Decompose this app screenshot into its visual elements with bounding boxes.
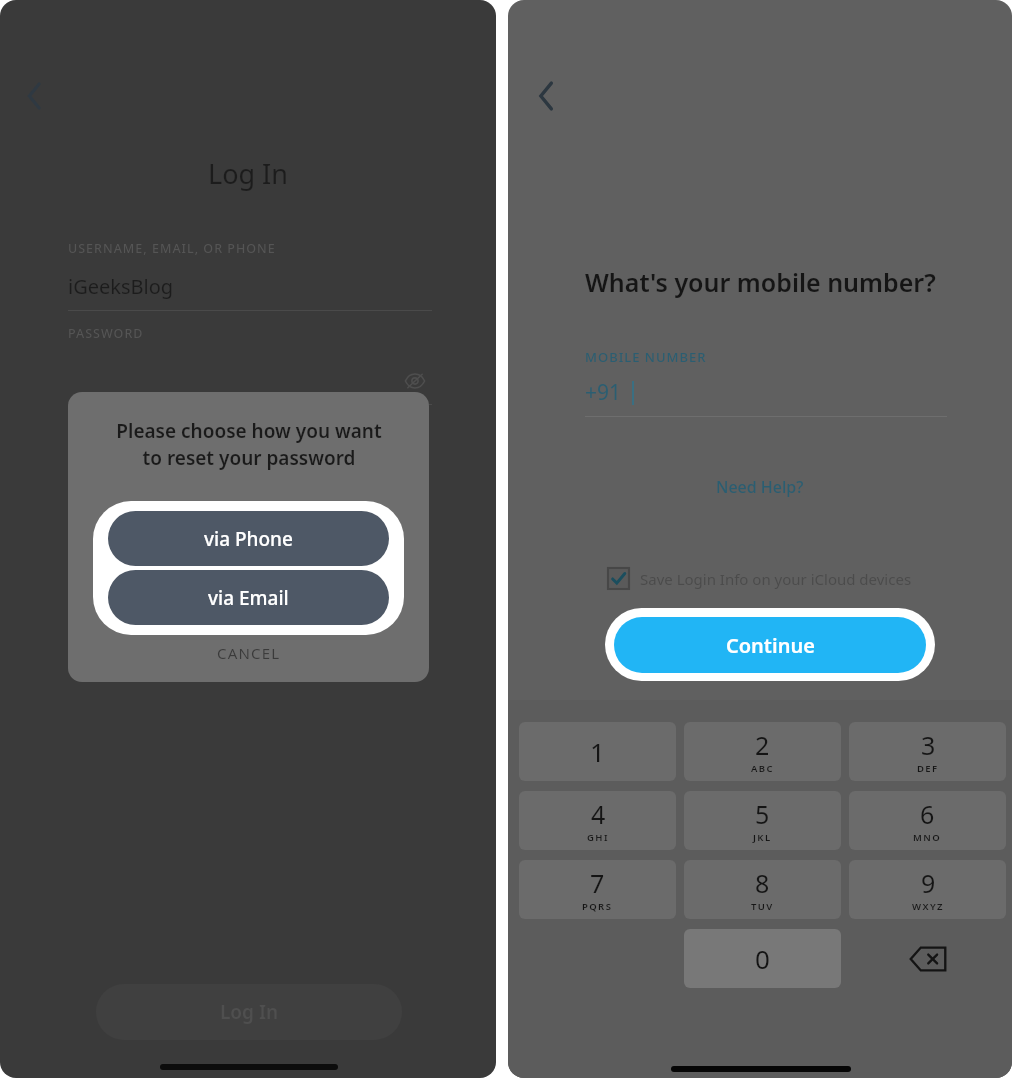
staticText: JKL bbox=[753, 831, 772, 844]
button[interactable]: 6 bbox=[849, 791, 1006, 850]
button[interactable]: CANCEL bbox=[199, 639, 299, 667]
button[interactable]: via Email bbox=[108, 570, 389, 625]
staticText: MOBILE NUMBER bbox=[585, 348, 707, 366]
button[interactable]: Continue bbox=[614, 617, 926, 673]
staticText: 5 bbox=[755, 797, 770, 831]
button[interactable]: 5 bbox=[684, 791, 841, 850]
staticText: 4 bbox=[591, 797, 606, 831]
staticText: Need Help? bbox=[716, 476, 804, 498]
staticText: 2 bbox=[755, 728, 770, 762]
staticText: 6 bbox=[920, 797, 935, 831]
staticText: MNO bbox=[913, 831, 942, 844]
staticText: via Email bbox=[208, 585, 289, 611]
staticText: ABC bbox=[751, 762, 774, 775]
button[interactable]: 0 bbox=[684, 929, 841, 988]
staticText: TUV bbox=[751, 900, 774, 913]
staticText: 3 bbox=[921, 728, 936, 762]
staticText: DEF bbox=[917, 762, 939, 775]
button[interactable]: 3 bbox=[849, 722, 1006, 781]
button[interactable]: 7 bbox=[519, 860, 676, 919]
button[interactable]: 4 bbox=[519, 791, 676, 850]
staticText: 0 bbox=[755, 941, 770, 976]
staticText: via Phone bbox=[204, 526, 293, 552]
staticText: Log In bbox=[220, 999, 279, 1025]
staticText: 8 bbox=[755, 866, 770, 900]
staticText: Please choose how you want to reset your… bbox=[116, 418, 382, 471]
staticText: CANCEL bbox=[217, 643, 281, 663]
button[interactable]: Backspace bbox=[849, 929, 1006, 988]
button[interactable]: 8 bbox=[684, 860, 841, 919]
staticText: Continue bbox=[726, 632, 815, 659]
button[interactable]: 9 bbox=[849, 860, 1006, 919]
staticText: Save Login Info on your iCloud devices bbox=[640, 569, 912, 589]
button[interactable]: Back bbox=[520, 68, 576, 124]
staticText: USERNAME, EMAIL, OR PHONE bbox=[68, 240, 276, 257]
button[interactable]: Need Help? bbox=[706, 472, 814, 502]
button[interactable]: Show password bbox=[398, 364, 432, 398]
staticText: Log In bbox=[208, 155, 288, 192]
staticText: WXYZ bbox=[912, 900, 944, 913]
staticText: PQRS bbox=[582, 900, 613, 913]
staticText: GHI bbox=[587, 831, 609, 844]
button[interactable]: via Phone bbox=[108, 511, 389, 566]
staticText: 7 bbox=[590, 866, 605, 900]
button[interactable]: 2 bbox=[684, 722, 841, 781]
button[interactable]: Save Login Info on your iCloud devices bbox=[508, 568, 1012, 589]
button[interactable]: 1 bbox=[519, 722, 676, 781]
staticText: What's your mobile number? bbox=[585, 265, 936, 299]
staticText: PASSWORD bbox=[68, 325, 144, 342]
staticText: 9 bbox=[921, 866, 936, 900]
staticText: 1 bbox=[590, 734, 605, 769]
staticText: +91 bbox=[585, 378, 622, 407]
staticText: iGeeksBlog bbox=[68, 273, 174, 300]
